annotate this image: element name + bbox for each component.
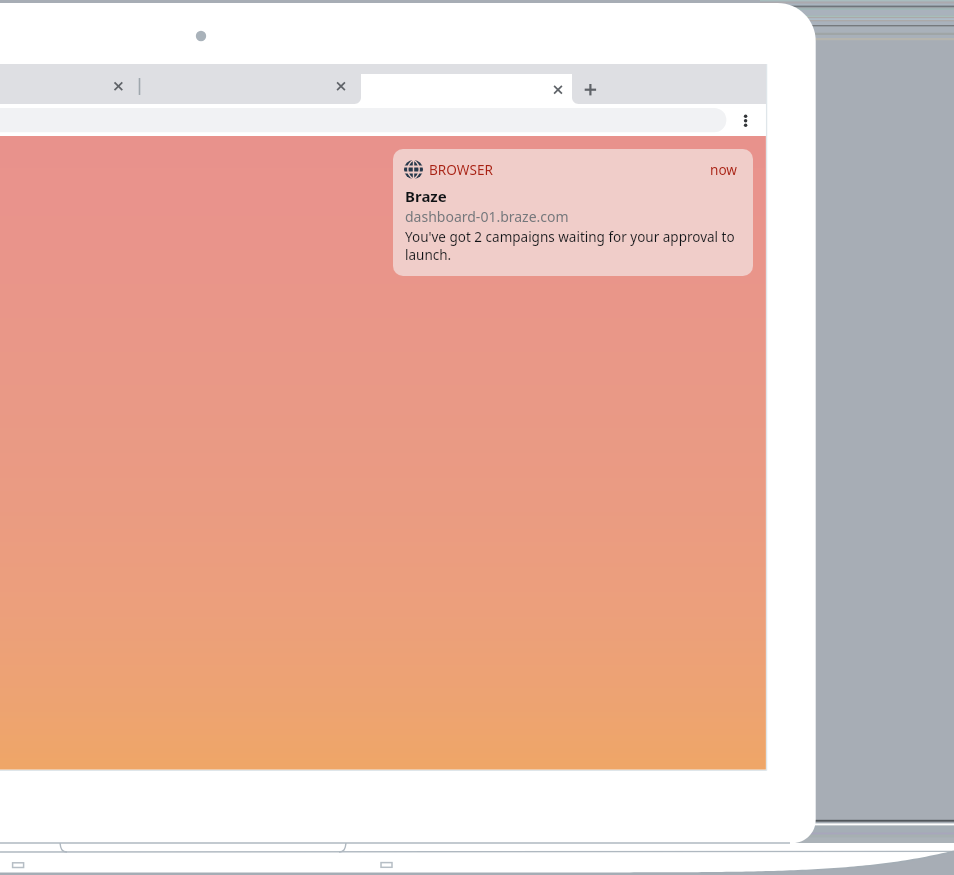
button[interactable]: More options (734, 108, 758, 132)
staticText: now (710, 160, 738, 179)
staticText: Braze (405, 186, 447, 206)
staticText: BROWSER (429, 160, 493, 179)
button[interactable]: Close active tab (546, 77, 571, 102)
staticText: You've got 2 campaigns waiting for your … (405, 228, 751, 264)
button[interactable]: Tab 2 (131, 74, 353, 104)
button[interactable]: Close tab 2 (329, 74, 354, 99)
button[interactable]: Close tab 1 (106, 74, 131, 99)
staticText: dashboard-01.braze.com (405, 207, 569, 226)
button[interactable]: New tab (578, 77, 603, 102)
button[interactable]: Tab 1 (0, 74, 130, 104)
button[interactable]: BROWSER (393, 149, 753, 276)
